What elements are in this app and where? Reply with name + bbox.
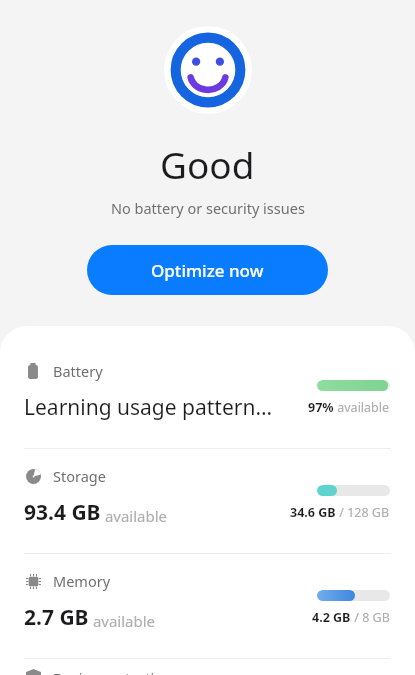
staticText: Battery <box>53 361 103 381</box>
button[interactable]: Storage <box>0 449 415 553</box>
staticText: Memory <box>53 571 111 591</box>
staticText: 34.6 GB <box>290 504 336 521</box>
button[interactable]: Optimize now <box>87 245 328 295</box>
staticText: Optimize now <box>151 259 264 282</box>
staticText: available <box>101 506 168 526</box>
staticText: Learning usage pattern… <box>24 393 289 422</box>
button[interactable]: Memory <box>0 554 415 658</box>
staticText: Device protection <box>53 668 172 675</box>
staticText: available <box>89 611 156 631</box>
staticText: / 128 GB <box>336 504 390 521</box>
staticText: available <box>334 399 390 416</box>
staticText: / 8 GB <box>351 609 390 626</box>
staticText: No battery or security issues <box>111 198 305 218</box>
other: Device status good <box>164 26 252 114</box>
staticText: 97% <box>308 399 334 416</box>
staticText: 93.4 GB <box>24 498 101 527</box>
button[interactable]: Device protection <box>0 659 415 675</box>
staticText: Storage <box>53 466 106 486</box>
staticText: Good <box>160 139 255 189</box>
button[interactable]: Battery <box>0 344 415 448</box>
staticText: 4.2 GB <box>312 609 351 626</box>
staticText: 2.7 GB <box>24 603 89 632</box>
